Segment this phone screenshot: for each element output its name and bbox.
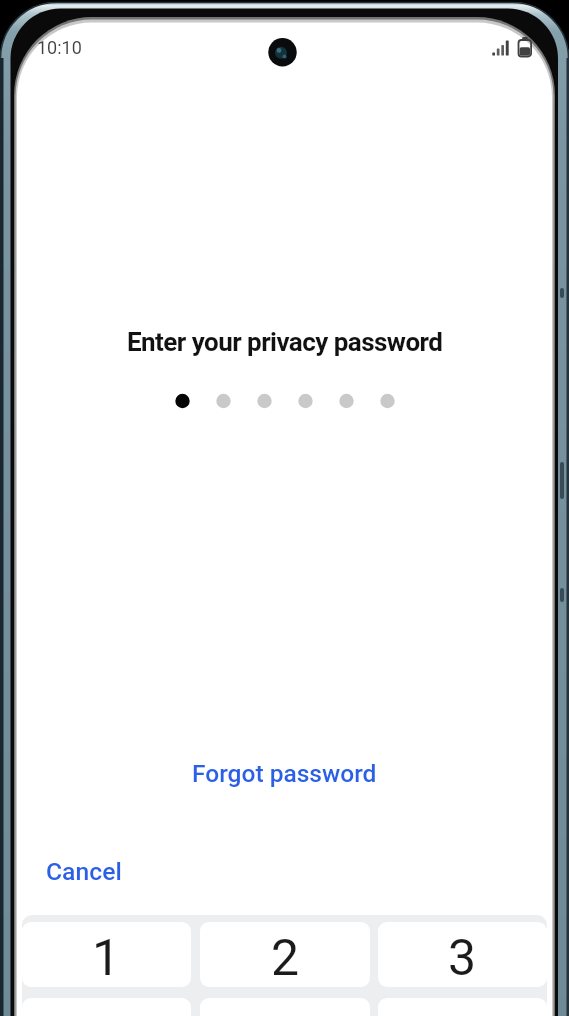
button[interactable]: 2 <box>200 922 370 987</box>
staticText: Cancel <box>46 857 122 886</box>
button[interactable]: 3 <box>378 922 547 987</box>
staticText: Enter your privacy password <box>127 327 443 357</box>
button[interactable]: 1 <box>22 922 191 987</box>
staticText: Forgot password <box>192 759 377 788</box>
staticText: 10:10 <box>37 37 82 58</box>
staticText: 1 <box>92 929 121 987</box>
button[interactable]: Forgot password <box>192 759 377 788</box>
button[interactable]: Cancel <box>46 857 122 886</box>
staticText: 3 <box>448 929 477 987</box>
staticText: 2 <box>271 929 300 987</box>
